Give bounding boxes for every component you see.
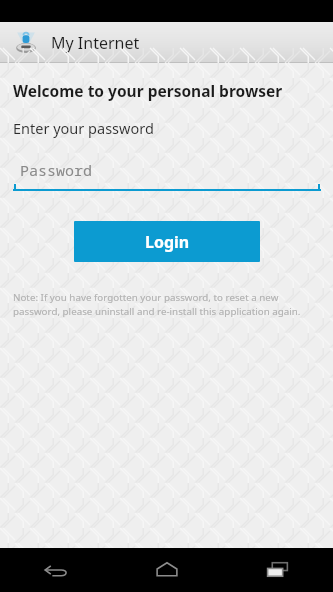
button[interactable]: Login xyxy=(74,221,260,262)
staticText: Note: If you have forgotten your passwor… xyxy=(13,291,303,318)
staticText: My Internet xyxy=(51,32,140,54)
button[interactable]: Home xyxy=(111,548,222,592)
staticText: Welcome to your personal browser xyxy=(13,80,283,101)
staticText: Enter your password xyxy=(13,118,154,138)
button[interactable]: Recent apps xyxy=(222,548,333,592)
button[interactable]: Password xyxy=(14,160,320,192)
button[interactable]: Back xyxy=(0,548,111,592)
staticText: Login xyxy=(145,231,190,253)
staticText: Password xyxy=(20,160,93,180)
